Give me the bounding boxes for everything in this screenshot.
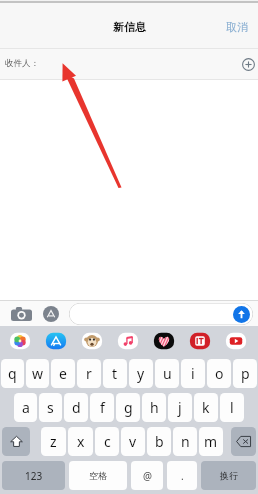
staticText: c (104, 432, 111, 451)
staticText: h (150, 398, 159, 417)
staticText: b (155, 432, 164, 451)
button[interactable]: s (39, 393, 62, 422)
staticText: j (178, 398, 182, 417)
staticText: s (47, 398, 54, 417)
button[interactable]: l (220, 393, 244, 422)
button[interactable]: n (173, 427, 197, 456)
staticText: 取消 (226, 20, 248, 34)
button[interactable]: k (194, 393, 218, 422)
button[interactable]: t (103, 359, 127, 388)
button[interactable]: @ (131, 461, 163, 490)
button[interactable]: j (168, 393, 192, 422)
staticText: 123 (25, 469, 43, 483)
staticText: e (59, 364, 67, 383)
button[interactable]: IT (188, 329, 212, 353)
staticText: w (32, 364, 44, 383)
staticText: r (86, 364, 92, 383)
staticText: 新信息 (113, 20, 146, 34)
staticText: u (163, 364, 172, 383)
button[interactable]: w (26, 359, 49, 388)
button[interactable]: z (41, 427, 66, 456)
button[interactable]: y (129, 359, 153, 388)
staticText: d (72, 398, 81, 417)
button[interactable]: . (167, 461, 197, 490)
button[interactable]: m (199, 427, 223, 456)
staticText: 收件人： (5, 58, 39, 69)
staticText: o (215, 364, 224, 383)
button[interactable]: f (90, 393, 114, 422)
button[interactable]: e (51, 359, 75, 388)
staticText: y (137, 364, 145, 383)
staticText: @ (143, 469, 152, 483)
button[interactable]: Camera (11, 306, 32, 322)
button[interactable]: r (77, 359, 101, 388)
button[interactable]: c (95, 427, 119, 456)
button[interactable]: Shift (2, 427, 30, 456)
button[interactable]: x (68, 427, 93, 456)
staticText: f (100, 398, 105, 417)
staticText: k (202, 398, 210, 417)
button[interactable]: h (142, 393, 166, 422)
button[interactable]: 空格 (69, 461, 127, 490)
button[interactable]: p (233, 359, 257, 388)
staticText: v (129, 432, 137, 451)
staticText: n (181, 432, 190, 451)
button[interactable]: o (207, 359, 231, 388)
staticText: i (191, 364, 195, 383)
staticText: a (22, 398, 30, 417)
button[interactable]: Send (233, 306, 250, 323)
button[interactable]: Add contact (242, 58, 255, 71)
button[interactable]: d (64, 393, 88, 422)
button[interactable]: i (181, 359, 205, 388)
staticText: l (230, 398, 234, 417)
staticText: 换行 (220, 470, 238, 481)
button[interactable]: Memoji (80, 329, 104, 353)
staticText: m (204, 432, 218, 451)
button[interactable]: b (147, 427, 171, 456)
staticText: q (8, 364, 17, 383)
button[interactable]: App Store (44, 329, 68, 353)
staticText: g (124, 398, 133, 417)
button[interactable]: 换行 (201, 461, 256, 490)
button[interactable]: 123 (2, 461, 65, 490)
button[interactable]: Music (116, 329, 140, 353)
button[interactable]: u (155, 359, 179, 388)
staticText: 空格 (89, 470, 107, 481)
staticText: x (77, 432, 85, 451)
button[interactable]: a (14, 393, 37, 422)
button[interactable]: v (121, 427, 145, 456)
button[interactable]: Send (69, 303, 253, 325)
staticText: p (241, 364, 250, 383)
button[interactable]: 取消 (216, 14, 258, 40)
button[interactable]: Digital Touch (152, 329, 176, 353)
button[interactable]: App Store (43, 306, 59, 322)
staticText: . (181, 469, 184, 483)
button[interactable]: YouTube (224, 329, 248, 353)
button[interactable]: g (116, 393, 140, 422)
staticText: z (50, 432, 57, 451)
staticText: t (112, 364, 118, 383)
button[interactable]: q (1, 359, 24, 388)
button[interactable]: Photos (8, 329, 32, 353)
button[interactable]: Delete (231, 427, 256, 456)
